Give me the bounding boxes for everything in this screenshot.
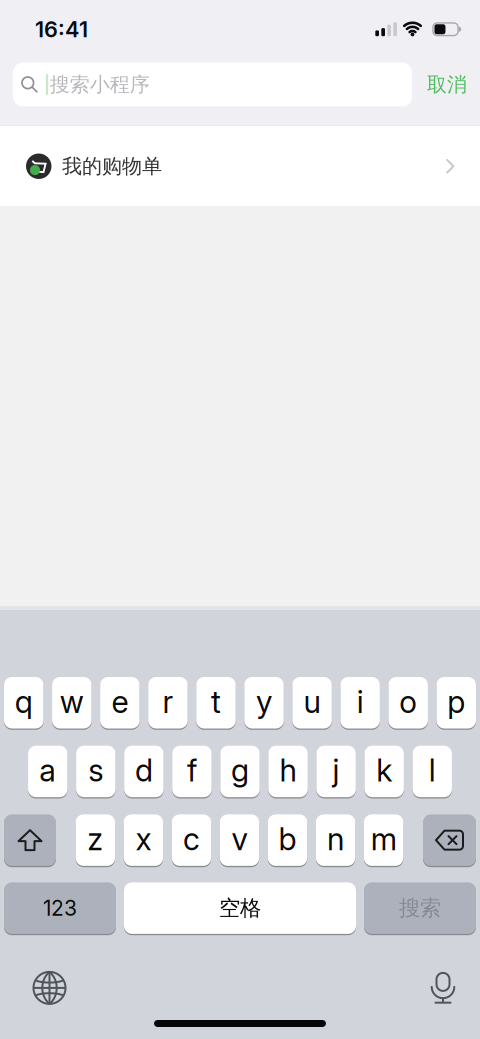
staticText: t (211, 683, 221, 720)
staticText: 取消 (427, 72, 467, 97)
button[interactable]: i (340, 677, 380, 728)
button[interactable]: a (28, 746, 68, 797)
staticText: d (135, 752, 153, 789)
button[interactable]: 123 (4, 882, 116, 934)
button[interactable]: q (4, 677, 43, 728)
button[interactable]: 空格 (124, 882, 356, 934)
button[interactable]: x (124, 814, 163, 866)
staticText: q (15, 683, 33, 720)
button[interactable]: t (196, 677, 236, 728)
staticText: x (135, 821, 151, 858)
staticText: s (88, 752, 103, 789)
button[interactable]: n (316, 814, 355, 866)
button[interactable]: u (292, 677, 332, 728)
staticText: i (357, 683, 364, 720)
staticText: f (187, 752, 197, 789)
staticText: v (231, 821, 247, 858)
staticText: n (327, 821, 344, 858)
button[interactable]: m (364, 814, 403, 866)
button[interactable]: r (148, 677, 188, 728)
button[interactable]: p (436, 677, 476, 728)
button[interactable]: d (124, 746, 164, 797)
staticText: h (280, 752, 297, 789)
button[interactable]: o (388, 677, 428, 728)
staticText: o (399, 683, 417, 720)
button[interactable]: b (268, 814, 307, 866)
button[interactable]: Shift (4, 814, 56, 866)
button[interactable]: e (100, 677, 140, 728)
button[interactable]: w (52, 677, 92, 728)
button[interactable]: s (76, 746, 116, 797)
button[interactable]: y (244, 677, 284, 728)
staticText: c (183, 821, 200, 858)
staticText: 搜索小程序 (50, 72, 150, 97)
staticText: l (429, 752, 436, 789)
button[interactable]: j (316, 746, 356, 797)
button[interactable]: v (220, 814, 259, 866)
button[interactable]: Delete (423, 814, 476, 866)
button[interactable]: h (268, 746, 308, 797)
staticText: 搜索 (399, 895, 441, 921)
staticText: z (87, 821, 103, 858)
staticText: 我的购物单 (62, 154, 162, 179)
staticText: y (256, 683, 272, 720)
button[interactable]: k (364, 746, 404, 797)
button[interactable]: 搜索 (364, 882, 476, 934)
staticText: j (333, 752, 340, 789)
staticText: a (39, 752, 56, 789)
staticText: g (231, 752, 249, 789)
button[interactable]: z (76, 814, 115, 866)
button[interactable]: g (220, 746, 260, 797)
staticText: r (162, 683, 173, 720)
button[interactable]: f (172, 746, 212, 797)
staticText: w (60, 683, 84, 720)
button[interactable]: Dictation (434, 972, 452, 1004)
staticText: p (447, 683, 465, 720)
button[interactable]: c (172, 814, 211, 866)
button[interactable]: 我的购物单 (0, 126, 480, 206)
staticText: b (278, 821, 296, 858)
staticText: 123 (43, 895, 77, 921)
staticText: 空格 (219, 895, 261, 921)
button[interactable]: 取消 (412, 72, 480, 97)
button[interactable]: l (412, 746, 452, 797)
staticText: e (111, 683, 128, 720)
staticText: 16:41 (35, 16, 88, 42)
staticText: k (376, 752, 392, 789)
button[interactable]: Next keyboard (32, 971, 66, 1005)
staticText: m (371, 821, 397, 858)
staticText: u (304, 683, 321, 720)
